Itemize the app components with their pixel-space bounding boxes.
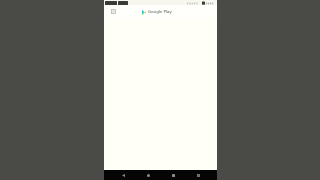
- button[interactable]: Google Play: [142, 9, 172, 15]
- button[interactable]: Recent apps: [167, 170, 179, 180]
- button[interactable]: Menu: [192, 170, 204, 180]
- button[interactable]: Navigate up: [110, 8, 117, 15]
- staticText: Google Play: [148, 9, 172, 15]
- button[interactable]: Back: [117, 170, 129, 180]
- button[interactable]: Home: [142, 170, 154, 180]
